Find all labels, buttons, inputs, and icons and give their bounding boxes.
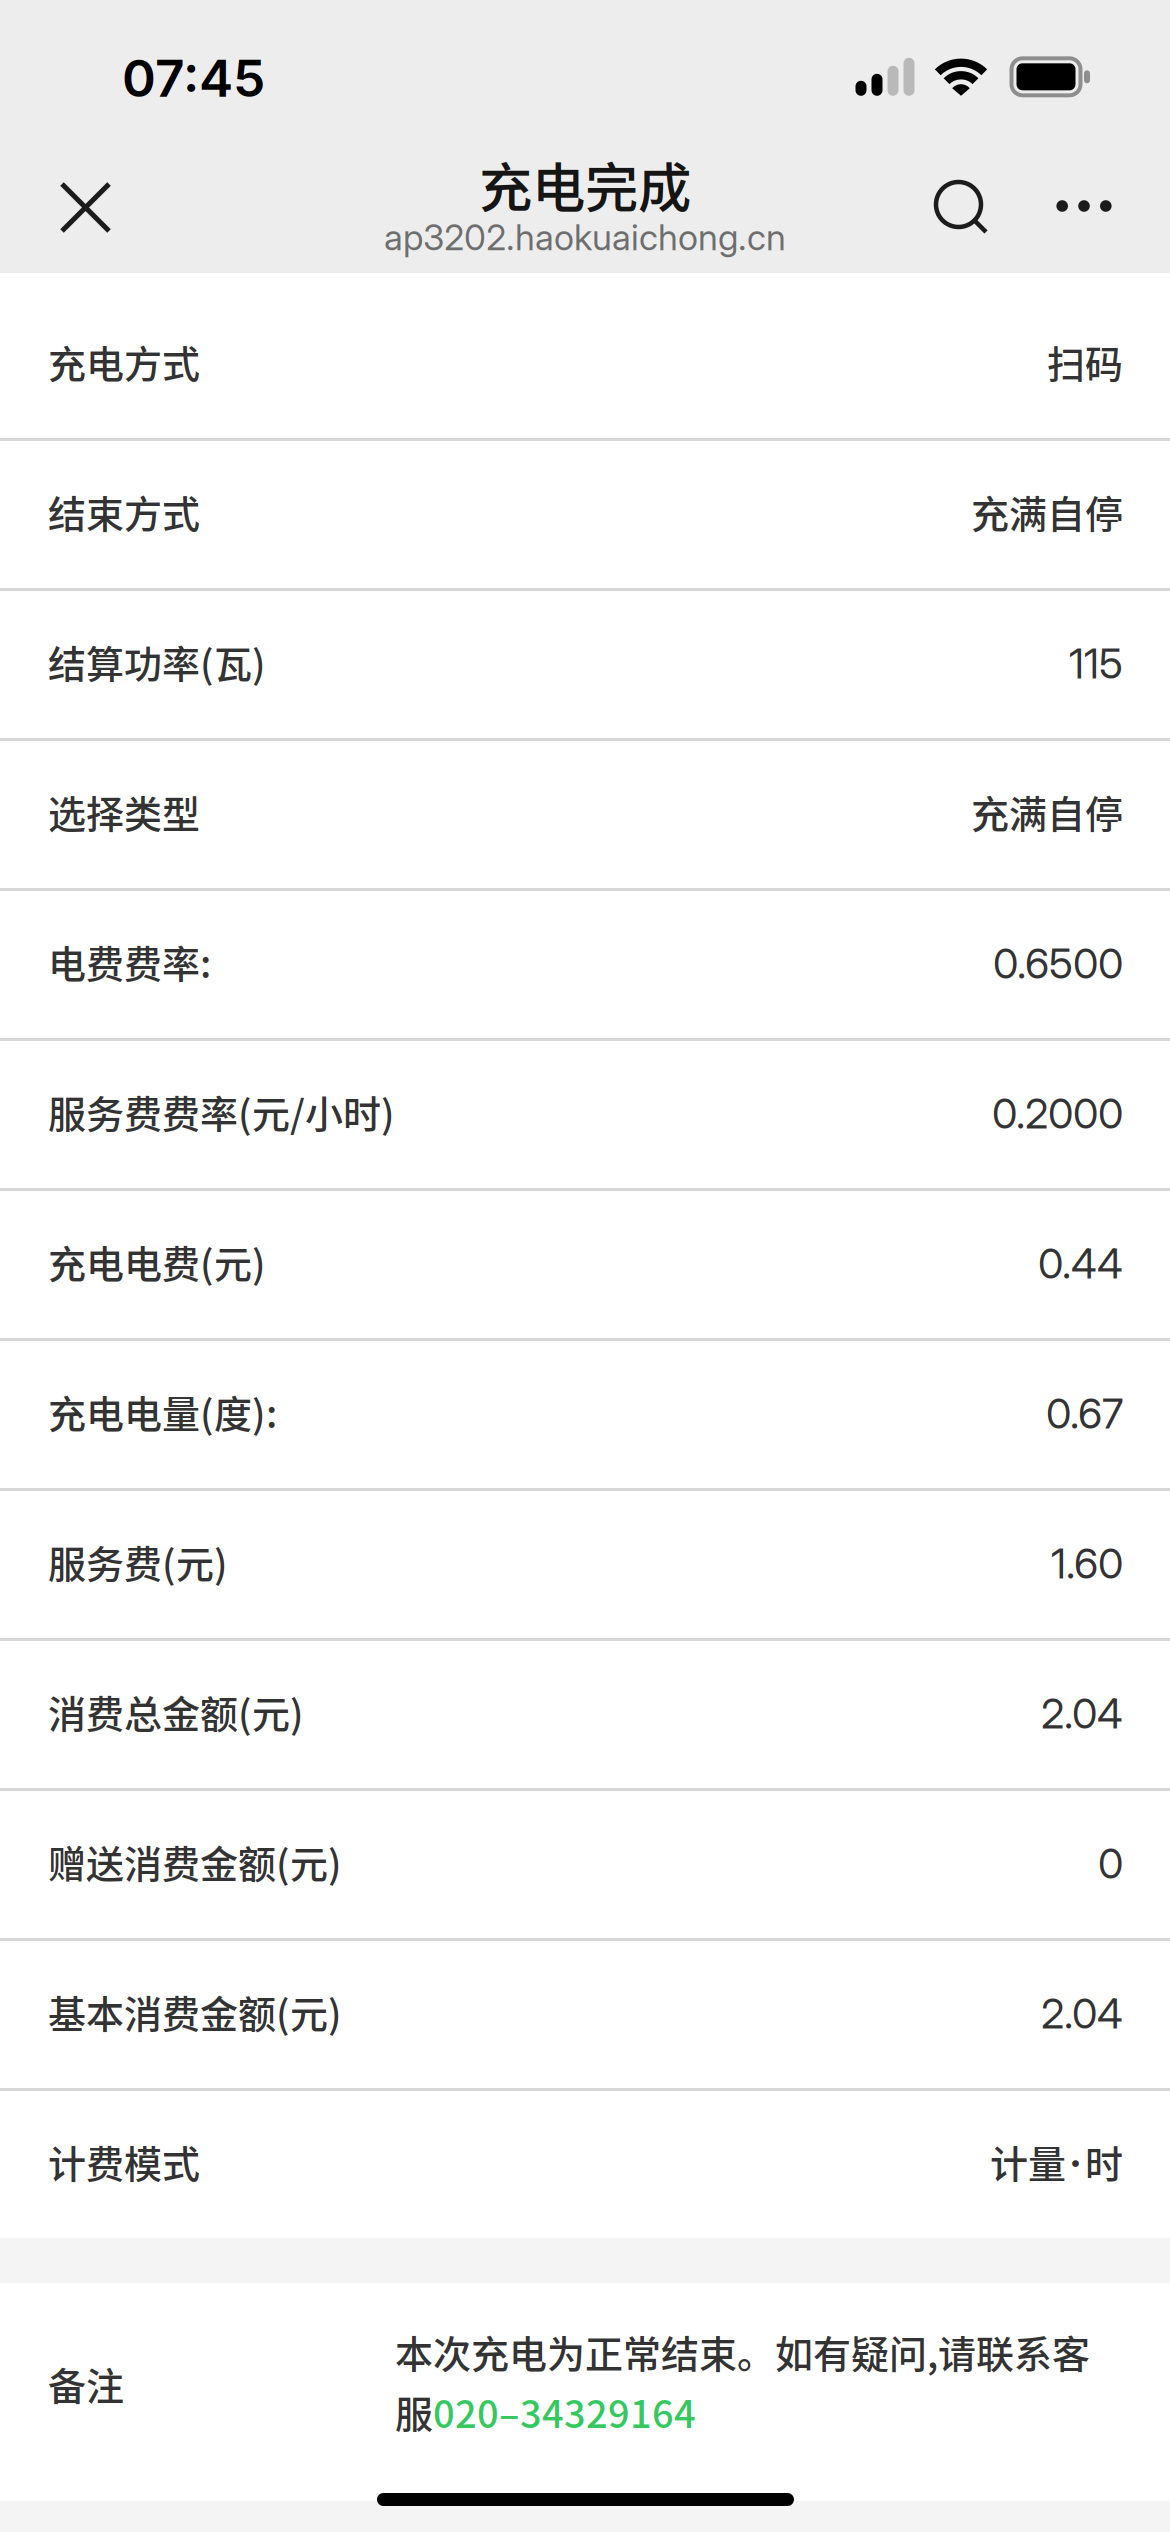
staticText: 0.6500: [993, 938, 1123, 988]
staticText: 0.67: [1046, 1388, 1123, 1438]
staticText: 结束方式: [48, 484, 200, 539]
staticText: 服务费(元): [48, 1534, 228, 1589]
staticText: 充电电费(元): [48, 1234, 266, 1289]
staticText: 计费模式: [48, 2134, 200, 2189]
staticText: 0.2000: [992, 1088, 1123, 1138]
staticText: 2.04: [1041, 1688, 1123, 1738]
staticText: 115: [1069, 638, 1123, 688]
staticText: 结算功率(瓦): [48, 634, 266, 689]
staticText: 0.44: [1038, 1238, 1123, 1288]
staticText: 0: [1098, 1838, 1123, 1888]
staticText: 备注: [48, 2356, 124, 2411]
staticText: ap3202.haokuaichong.cn: [384, 216, 786, 259]
staticText: 电费费率:: [48, 934, 211, 989]
staticText: 2.04: [1041, 1988, 1123, 2038]
staticText: 服务费费率(元/小时): [48, 1084, 395, 1139]
staticText: 基本消费金额(元): [48, 1984, 342, 2039]
staticText: 07:45: [122, 47, 265, 109]
staticText: 本次充电为正常结束。如有疑问,请联系客服020–34329164: [395, 2324, 1090, 2439]
staticText: 选择类型: [48, 784, 200, 839]
button[interactable]: Close: [34, 156, 137, 259]
staticText: 充满自停: [971, 784, 1123, 839]
button[interactable]: More: [1029, 156, 1139, 256]
staticText: 充电电量(度):: [48, 1384, 277, 1439]
staticText: 扫码: [1047, 334, 1123, 389]
staticText: 充电方式: [48, 334, 200, 389]
staticText: 1.60: [1051, 1538, 1123, 1588]
staticText: 消费总金额(元): [48, 1684, 304, 1739]
staticText: 充满自停: [971, 484, 1123, 539]
button[interactable]: Search: [923, 162, 1023, 262]
staticText: 赠送消费金额(元): [48, 1834, 342, 1889]
staticText: 充电完成: [479, 146, 691, 223]
staticText: 计量･时: [990, 2134, 1123, 2189]
